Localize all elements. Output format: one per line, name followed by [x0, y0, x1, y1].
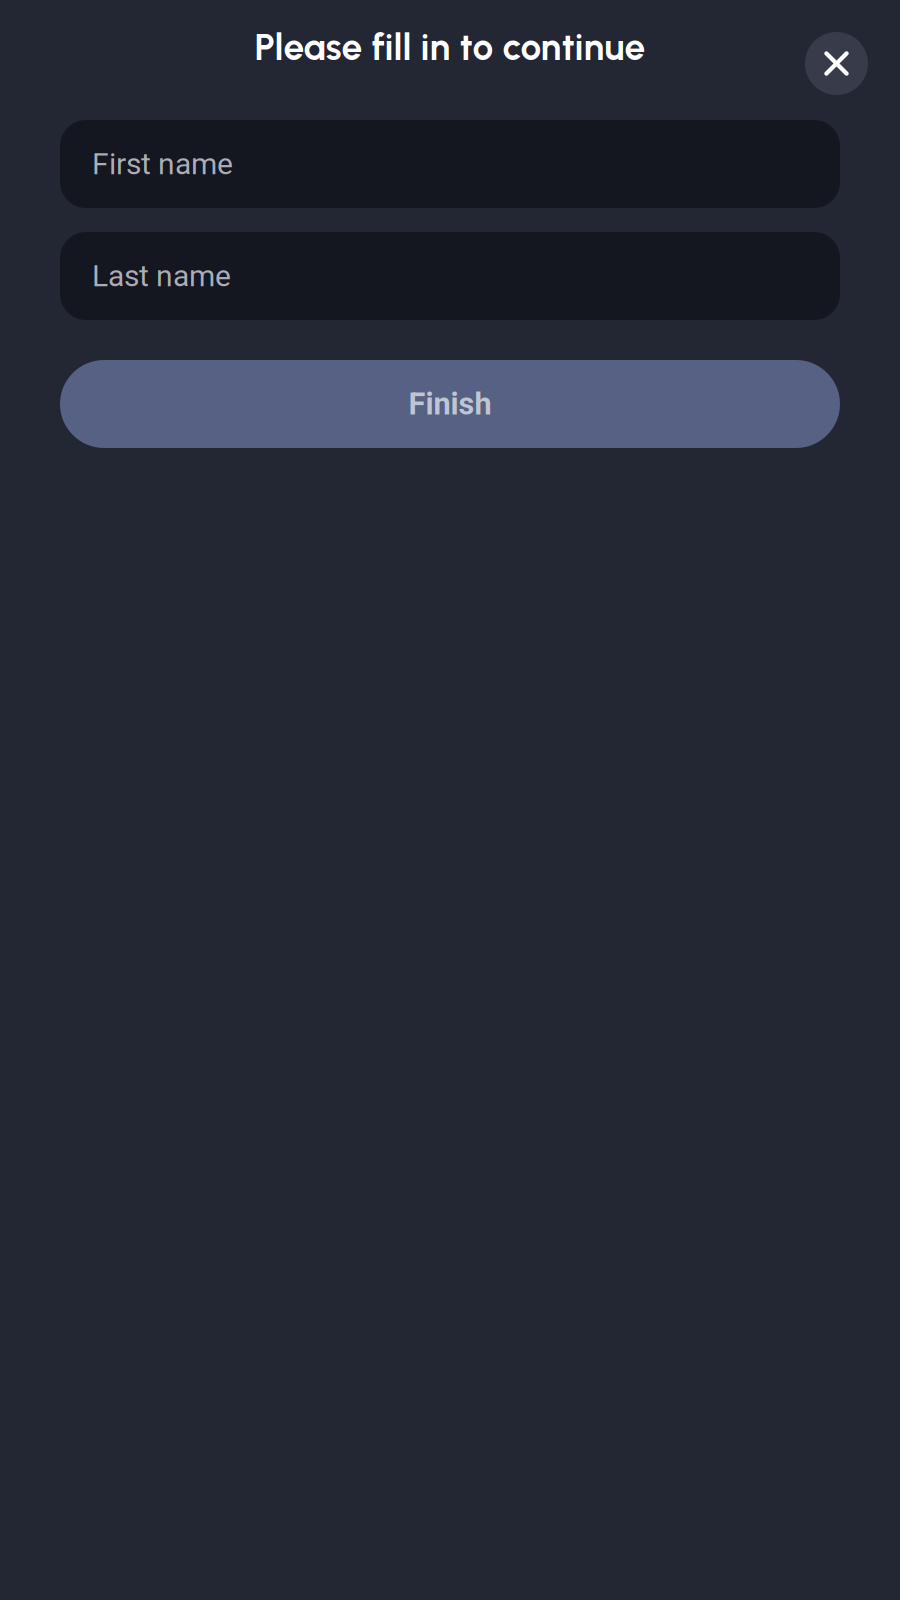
staticText: Finish: [408, 386, 491, 422]
staticText: First name: [92, 146, 233, 182]
staticText: Please fill in to continue: [254, 25, 645, 69]
button[interactable]: Close: [805, 32, 868, 95]
staticText: Last name: [92, 258, 231, 294]
button[interactable]: Finish: [60, 360, 840, 448]
button[interactable]: First name: [60, 120, 840, 208]
button[interactable]: Last name: [60, 232, 840, 320]
